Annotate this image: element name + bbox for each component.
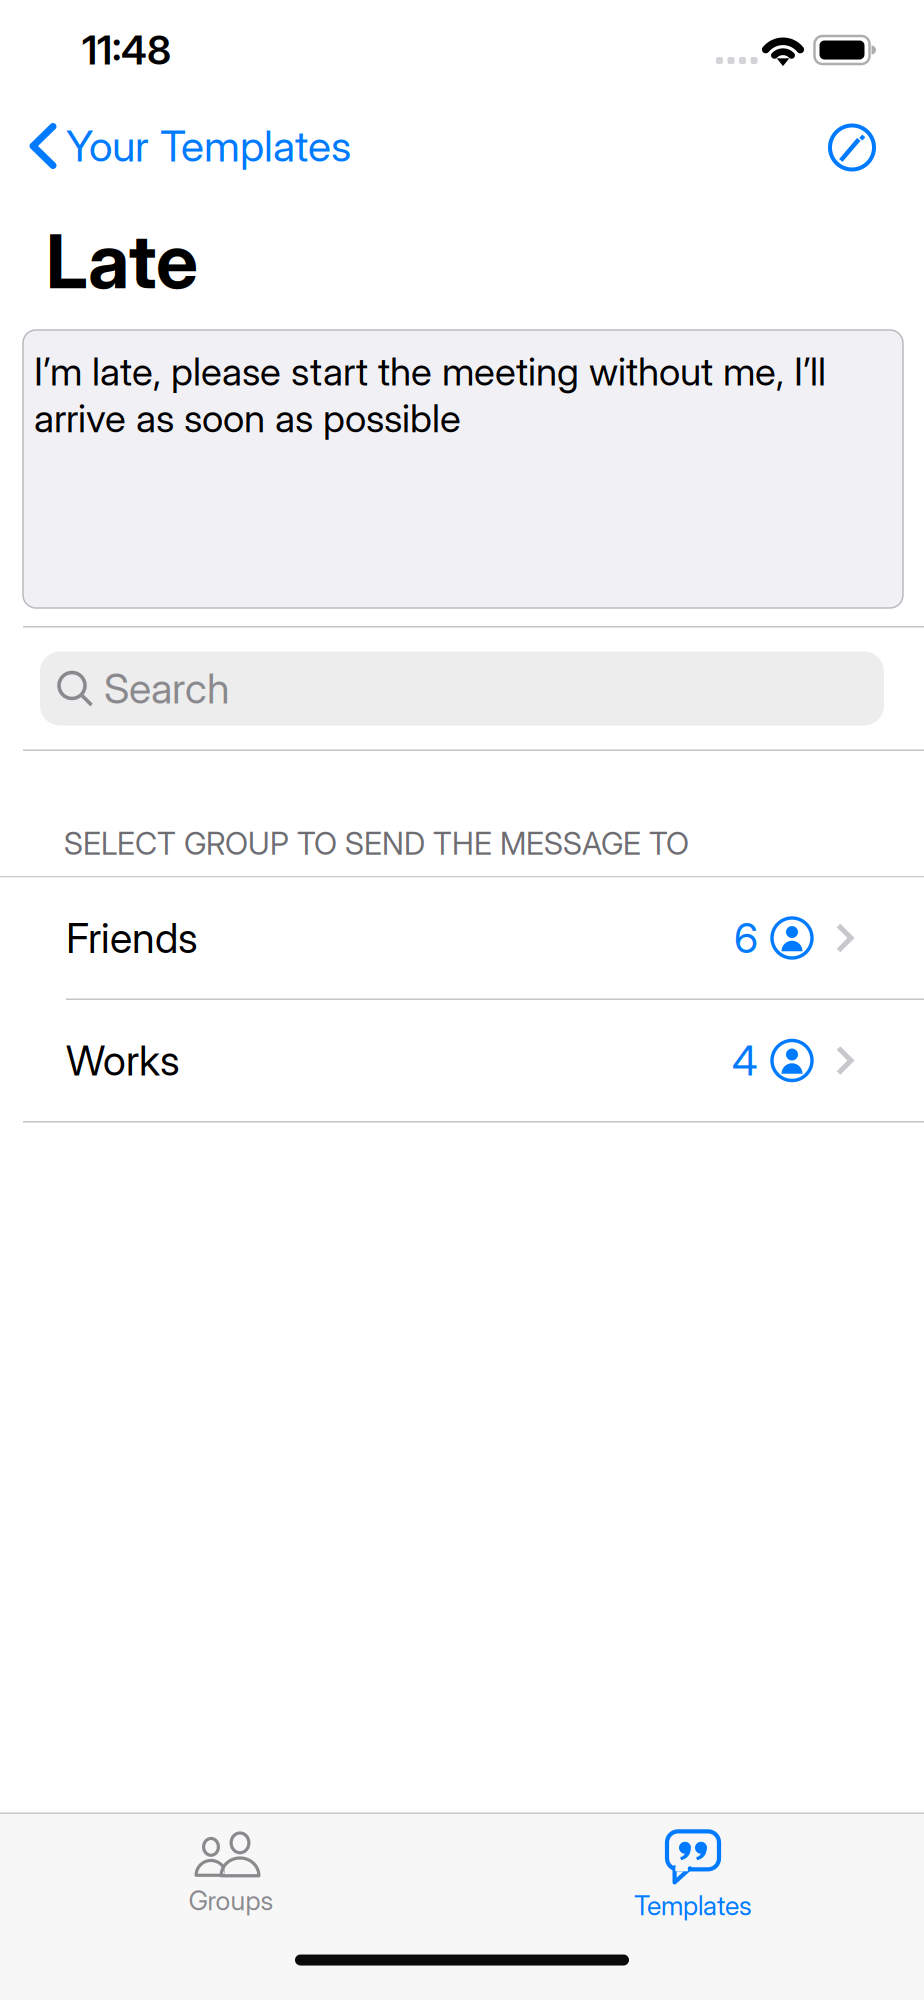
staticText: Search: [104, 663, 230, 713]
staticText: 4: [732, 1035, 758, 1085]
staticText: 6: [734, 913, 758, 963]
staticText: Works: [66, 1035, 180, 1085]
staticText: Friends: [66, 913, 198, 963]
staticText: 11:48: [82, 26, 171, 74]
button[interactable]: Templates: [462, 1814, 924, 1934]
button[interactable]: Edit template: [802, 100, 924, 192]
staticText: Late: [46, 216, 198, 306]
staticText: Your Templates: [66, 120, 351, 172]
staticText: Groups: [188, 1884, 273, 1917]
button[interactable]: Friends: [0, 877, 924, 998]
button[interactable]: Your Templates: [0, 100, 371, 192]
staticText: Templates: [634, 1889, 752, 1922]
staticText: SELECT GROUP TO SEND THE MESSAGE TO: [64, 825, 689, 862]
button[interactable]: Groups: [0, 1814, 462, 1934]
button[interactable]: Works: [0, 1000, 924, 1121]
staticText: I’m late, please start the meeting witho…: [34, 348, 826, 442]
